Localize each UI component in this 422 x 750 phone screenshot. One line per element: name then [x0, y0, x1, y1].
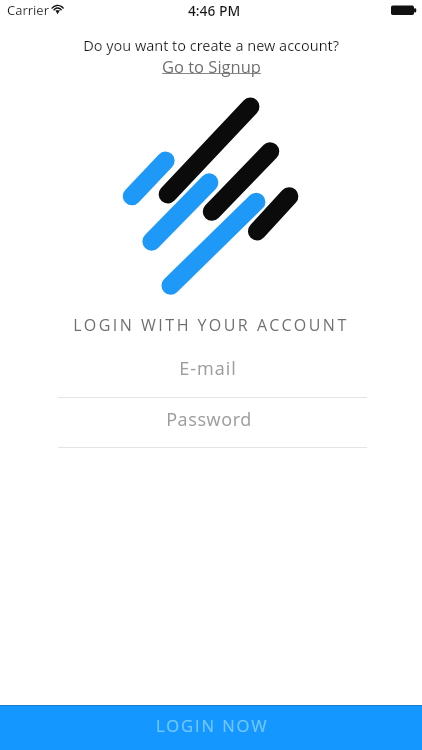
staticText: LOGIN NOW	[156, 714, 269, 737]
staticText: LOGIN WITH YOUR ACCOUNT	[0, 314, 422, 336]
other: Wi-Fi signal	[51, 1, 65, 15]
staticText: Password	[0, 407, 420, 432]
staticText: E-mail	[0, 356, 419, 381]
button[interactable]: LOGIN NOW	[0, 705, 422, 750]
button[interactable]: Go to Signup	[162, 55, 261, 77]
staticText: Do you want to create a new account?	[0, 36, 422, 56]
staticText: Carrier	[7, 1, 49, 19]
staticText: Go to Signup	[162, 55, 261, 77]
staticText: 4:46 PM	[3, 1, 422, 20]
